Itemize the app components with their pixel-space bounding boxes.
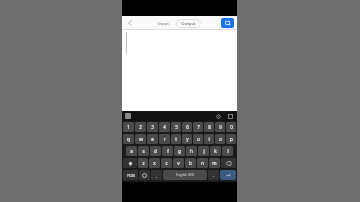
button[interactable]: l <box>222 146 233 156</box>
button[interactable]: 9 <box>215 122 225 132</box>
staticText: c <box>165 160 168 166</box>
button[interactable]: 8 <box>204 122 214 132</box>
button[interactable]: k <box>210 146 221 156</box>
button[interactable]: d <box>150 146 161 156</box>
staticText: , <box>156 173 157 178</box>
button[interactable]: Navigate up <box>125 18 135 28</box>
button[interactable]: g <box>174 146 185 156</box>
staticText: s <box>142 148 145 154</box>
staticText: a <box>130 148 133 154</box>
button[interactable]: Input <box>154 19 173 28</box>
button[interactable]: p <box>226 134 236 144</box>
staticText: . <box>213 173 214 178</box>
staticText: q <box>127 136 130 142</box>
button[interactable]: y <box>182 134 192 144</box>
button[interactable]: e <box>147 134 158 144</box>
button[interactable]: 6 <box>182 122 192 132</box>
button[interactable]: 5 <box>171 122 181 132</box>
button[interactable]: 1 <box>123 122 134 132</box>
staticText: y <box>186 136 189 142</box>
button[interactable]: 3 <box>147 122 158 132</box>
staticText: z <box>142 160 145 166</box>
staticText: 3 <box>151 124 154 130</box>
button[interactable]: . <box>208 170 219 180</box>
staticText: English (US) <box>176 173 194 177</box>
button[interactable]: ?123 <box>123 170 138 180</box>
button[interactable]: Backspace <box>221 158 236 168</box>
button[interactable]: Shift <box>123 158 137 168</box>
button[interactable]: Space <box>163 170 207 180</box>
staticText: x <box>153 160 156 166</box>
button[interactable]: Keyboard options <box>125 113 131 119</box>
button[interactable]: z <box>138 158 148 168</box>
staticText: g <box>178 148 181 154</box>
staticText: 7 <box>197 124 200 130</box>
button[interactable]: o <box>215 134 225 144</box>
button[interactable]: , <box>151 170 162 180</box>
staticText: Input <box>158 21 169 27</box>
staticText: r <box>164 136 166 142</box>
button[interactable]: s <box>138 146 149 156</box>
button[interactable]: i <box>204 134 214 144</box>
button[interactable]: Themes <box>226 112 234 120</box>
button[interactable]: c <box>161 158 172 168</box>
button[interactable]: 7 <box>193 122 203 132</box>
staticText: 8 <box>208 124 211 130</box>
button[interactable]: u <box>193 134 203 144</box>
button[interactable]: t <box>171 134 181 144</box>
staticText: 9 <box>219 124 222 130</box>
button[interactable]: v <box>173 158 184 168</box>
staticText: ?123 <box>127 173 135 178</box>
staticText: h <box>190 148 193 154</box>
button[interactable]: 0 <box>226 122 236 132</box>
staticText: Output <box>181 21 196 27</box>
button[interactable]: a <box>126 146 137 156</box>
button[interactable]: Translate <box>221 18 234 28</box>
button[interactable]: Enter <box>220 170 236 180</box>
staticText: j <box>203 148 205 154</box>
button[interactable]: m <box>209 158 220 168</box>
staticText: m <box>212 160 217 166</box>
staticText: v <box>177 160 180 166</box>
staticText: n <box>201 160 204 166</box>
staticText: p <box>230 136 233 142</box>
staticText: f <box>167 148 169 154</box>
button[interactable]: w <box>135 134 146 144</box>
staticText: 4 <box>163 124 166 130</box>
staticText: b <box>189 160 192 166</box>
staticText: t <box>175 136 177 142</box>
staticText: i <box>208 136 210 142</box>
staticText: d <box>154 148 157 154</box>
button[interactable]: r <box>159 134 170 144</box>
staticText: 2 <box>139 124 142 130</box>
button[interactable]: Settings <box>214 112 222 120</box>
staticText: l <box>227 148 229 154</box>
staticText: 0 <box>230 124 233 130</box>
staticText: 6 <box>186 124 189 130</box>
staticText: 1 <box>127 124 130 130</box>
button[interactable]: 4 <box>159 122 170 132</box>
staticText: w <box>139 136 143 142</box>
staticText: o <box>219 136 222 142</box>
staticText: k <box>214 148 217 154</box>
staticText: e <box>151 136 154 142</box>
button[interactable]: q <box>123 134 134 144</box>
button[interactable]: f <box>162 146 173 156</box>
staticText: 5 <box>175 124 178 130</box>
staticText: u <box>197 136 200 142</box>
button[interactable]: Output <box>176 19 201 28</box>
button[interactable]: Emoji <box>139 170 150 180</box>
button[interactable]: j <box>198 146 209 156</box>
button[interactable]: n <box>197 158 208 168</box>
button[interactable]: h <box>186 146 197 156</box>
button[interactable]: b <box>185 158 196 168</box>
button[interactable]: x <box>149 158 160 168</box>
button[interactable]: 2 <box>135 122 146 132</box>
